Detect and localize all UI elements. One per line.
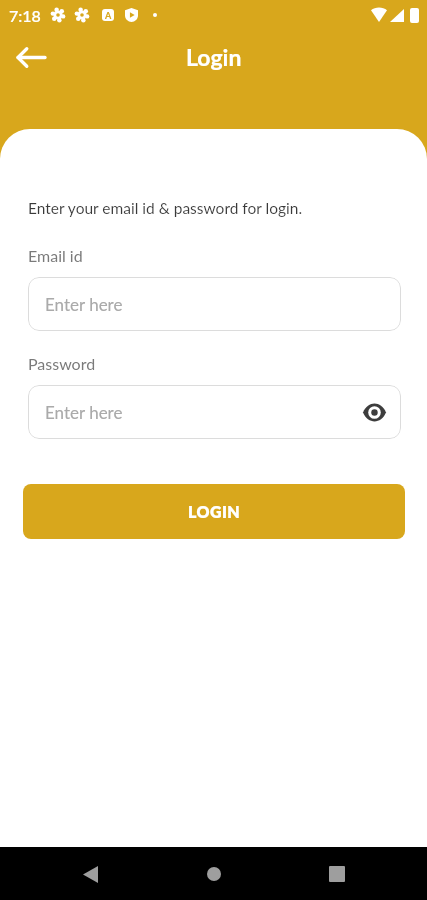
button[interactable]: Enter here (28, 385, 401, 439)
staticText: Email id (28, 246, 83, 265)
button[interactable]: Home (192, 852, 236, 896)
staticText: Login (186, 43, 242, 71)
button[interactable]: Enter here (28, 277, 401, 331)
button[interactable]: Recents (315, 852, 359, 896)
button[interactable]: Back (8, 34, 54, 80)
staticText: Enter your email id & password for login… (28, 199, 303, 218)
staticText: 7:18 (9, 6, 41, 25)
staticText: Enter here (45, 294, 123, 314)
staticText: Enter here (45, 402, 123, 422)
button[interactable]: Toggle password visibility (359, 397, 389, 427)
staticText: A (105, 10, 112, 21)
staticText: Password (28, 354, 96, 373)
staticText: LOGIN (188, 502, 241, 521)
button[interactable]: LOGIN (23, 484, 405, 539)
button[interactable]: Back (68, 852, 112, 896)
